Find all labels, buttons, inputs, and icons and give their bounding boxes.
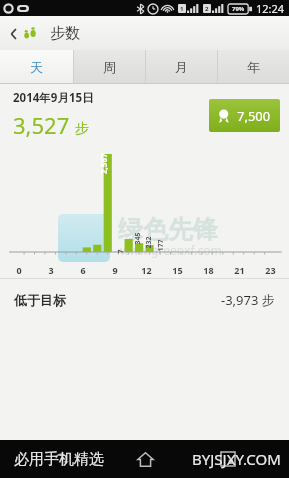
- staticText: 步: [75, 120, 89, 138]
- staticText: 2,567: [98, 153, 109, 174]
- staticText: 2: [205, 5, 209, 13]
- staticText: 345: [132, 231, 142, 244]
- staticText: -3,973 步: [221, 291, 275, 309]
- staticText: BYJSJXY.COM: [192, 449, 281, 469]
- button[interactable]: Back: [6, 20, 84, 47]
- staticText: 15: [172, 264, 183, 276]
- staticText: 年: [247, 59, 260, 75]
- staticText: 3,527: [13, 110, 70, 140]
- button[interactable]: Home: [123, 440, 167, 478]
- button[interactable]: 年: [217, 50, 289, 83]
- staticText: 12:24: [256, 1, 285, 16]
- button[interactable]: Back: [39, 440, 83, 478]
- staticText: 1: [180, 5, 184, 13]
- staticText: 周: [103, 59, 116, 75]
- staticText: 步数: [50, 24, 80, 43]
- staticText: 12: [141, 264, 152, 276]
- staticText: 0: [16, 264, 22, 276]
- staticText: 79%: [232, 5, 245, 13]
- staticText: 177: [155, 238, 165, 251]
- staticText: 绿色先锋: [118, 214, 218, 245]
- button[interactable]: Recents: [206, 440, 250, 478]
- button[interactable]: 周: [73, 50, 145, 83]
- staticText: 6: [80, 264, 86, 276]
- staticText: 23: [265, 264, 276, 276]
- staticText: 3: [48, 264, 54, 276]
- staticText: 21: [234, 264, 245, 276]
- button[interactable]: 低于目标: [0, 279, 289, 321]
- staticText: 232: [143, 235, 153, 248]
- staticText: 7: [115, 248, 125, 253]
- staticText: 低于目标: [14, 292, 66, 308]
- staticText: 必用手机精选: [14, 450, 104, 469]
- staticText: 2014年9月15日: [13, 90, 94, 106]
- staticText: 天: [30, 59, 43, 75]
- button[interactable]: 7,500: [209, 99, 280, 132]
- button[interactable]: 天: [0, 50, 73, 83]
- staticText: 月: [175, 59, 188, 75]
- staticText: 18: [203, 264, 214, 276]
- staticText: 9: [112, 264, 118, 276]
- staticText: www.greenxf.com: [120, 242, 222, 258]
- button[interactable]: 月: [145, 50, 217, 83]
- staticText: 7,500: [237, 107, 271, 125]
